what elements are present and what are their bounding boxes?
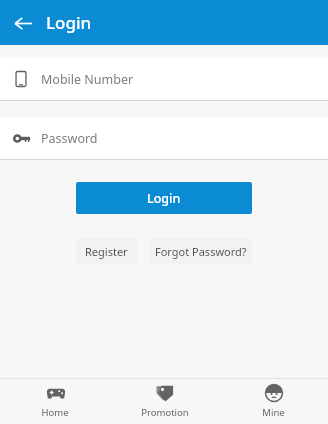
staticText: Login — [46, 11, 92, 34]
staticText: Mobile Number — [41, 71, 134, 88]
staticText: Mine — [262, 406, 285, 419]
button[interactable]: Back — [4, 4, 42, 42]
staticText: Password — [41, 130, 98, 147]
staticText: Register — [85, 244, 128, 259]
button[interactable]: Home — [0, 378, 110, 424]
button[interactable]: Forgot Password? — [150, 238, 252, 265]
button[interactable]: Password — [0, 117, 328, 159]
button[interactable]: Register — [76, 238, 137, 265]
staticText: Home — [41, 406, 69, 419]
button[interactable]: Login — [76, 182, 252, 214]
button[interactable]: Mine — [219, 378, 328, 424]
button[interactable]: Mobile Number — [0, 58, 328, 100]
staticText: Promotion — [141, 406, 189, 419]
staticText: Forgot Password? — [155, 244, 247, 259]
button[interactable]: Promotion — [110, 378, 219, 424]
staticText: Login — [147, 190, 181, 207]
